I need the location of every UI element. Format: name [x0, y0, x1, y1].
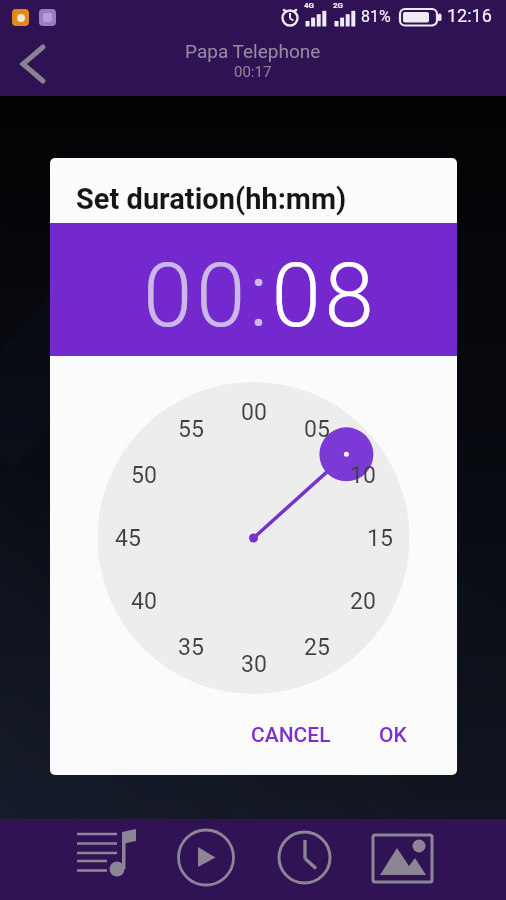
staticText: 05: [304, 416, 330, 443]
staticText: 12:16: [447, 5, 492, 26]
staticText: 45: [115, 525, 141, 552]
staticText: 2G: [333, 1, 344, 10]
button[interactable]: [274, 829, 332, 891]
staticText: CANCEL: [251, 723, 331, 748]
staticText: 10: [350, 462, 376, 489]
button[interactable]: [66, 829, 146, 891]
button[interactable]: [0, 33, 60, 96]
staticText: Set duration(hh:mm): [76, 182, 347, 216]
staticText: OK: [379, 723, 407, 748]
button[interactable]: [176, 829, 234, 891]
button[interactable]: OK: [379, 723, 407, 748]
staticText: 30: [241, 651, 267, 678]
staticText: 00:17: [234, 63, 272, 81]
staticText: 25: [304, 634, 330, 661]
staticText: 81%: [361, 7, 391, 26]
staticText: 00: [241, 399, 267, 426]
button[interactable]: [371, 829, 435, 891]
staticText: 20: [350, 588, 376, 615]
staticText: 00:08: [143, 243, 378, 347]
button[interactable]: CANCEL: [251, 723, 331, 748]
staticText: 35: [178, 634, 204, 661]
staticText: Papa Telephone: [185, 40, 321, 62]
staticText: 55: [178, 416, 204, 443]
staticText: 4G: [304, 1, 315, 10]
staticText: 15: [367, 525, 393, 552]
staticText: 40: [131, 588, 157, 615]
staticText: 50: [131, 462, 157, 489]
